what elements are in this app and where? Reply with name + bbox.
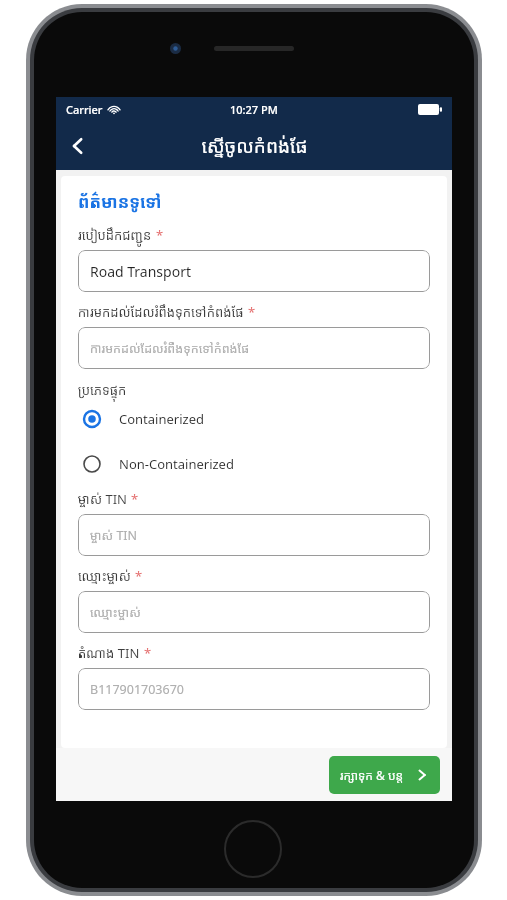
staticText: ម្ចាស់ TIN (90, 527, 138, 544)
button[interactable]: Containerized (78, 407, 430, 431)
button[interactable]: ការមកដល់ដែលរំពឹងទុកទៅកំពង់ផែ (78, 327, 430, 369)
staticText: ប្រភេទផ្ទុក (78, 381, 127, 399)
button[interactable]: ឈ្មោះម្ចាស់ (78, 591, 430, 633)
staticText: Containerized (119, 410, 204, 428)
staticText: Carrier (66, 102, 103, 117)
staticText: * (144, 644, 152, 662)
staticText: Road Transport (90, 262, 191, 281)
staticText: * (156, 226, 164, 244)
staticText: ម្ចាស់ TIN (78, 490, 127, 508)
staticText: ឈ្មោះម្ចាស់ (78, 567, 131, 585)
button[interactable]: Non-Containerized (78, 452, 430, 476)
staticText: ស្នើចូលកំពង់ផែ (201, 133, 308, 159)
staticText: តំណាង TIN (78, 644, 140, 662)
button[interactable]: រក្សាទុក & បន្ត (329, 756, 440, 794)
staticText: 10:27 PM (230, 102, 278, 117)
staticText: របៀបដឹកជញ្ជូន (78, 226, 152, 244)
button[interactable]: Back (56, 124, 100, 168)
staticText: ការមកដល់ដែលរំពឹងទុកទៅកំពង់ផែ (90, 340, 250, 357)
staticText: * (135, 567, 143, 585)
staticText: * (131, 490, 139, 508)
button[interactable]: B117901703670 (78, 668, 430, 710)
staticText: Non-Containerized (119, 455, 234, 473)
staticText: * (248, 303, 256, 321)
staticText: ឈ្មោះម្ចាស់ (90, 604, 141, 621)
button[interactable]: ម្ចាស់ TIN (78, 514, 430, 556)
staticText: រក្សាទុក & បន្ត (340, 767, 404, 783)
staticText: ការមកដល់ដែលរំពឹងទុកទៅកំពង់ផែ (78, 303, 244, 321)
button[interactable]: Road Transport (78, 250, 430, 292)
staticText: ព័ត៌មានទូទៅ (78, 190, 162, 213)
staticText: B117901703670 (90, 681, 184, 698)
